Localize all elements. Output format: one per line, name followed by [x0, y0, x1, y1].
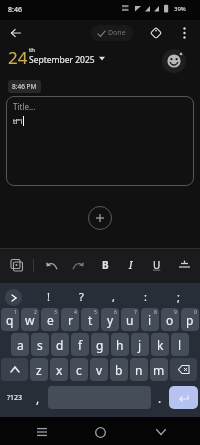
button[interactable]: ,	[106, 285, 120, 307]
staticText: l	[178, 337, 182, 353]
staticText: 5	[94, 309, 97, 316]
button[interactable]: f	[71, 333, 89, 356]
button[interactable]: U	[148, 253, 166, 277]
staticText: b	[115, 362, 123, 378]
button[interactable]: Done	[91, 25, 133, 41]
staticText: s	[37, 337, 43, 353]
button[interactable]: e	[41, 308, 59, 331]
button[interactable]	[68, 255, 88, 275]
button[interactable]: z	[30, 358, 48, 381]
button[interactable]	[1, 358, 28, 381]
staticText: I	[129, 258, 133, 272]
button[interactable]	[174, 23, 194, 43]
staticText: !	[47, 289, 50, 304]
staticText: Title...	[13, 101, 36, 112]
button[interactable]: 8:46 PM	[12, 82, 37, 91]
staticText: x	[56, 362, 63, 378]
button[interactable]	[6, 23, 26, 43]
staticText: Done	[108, 28, 126, 38]
button[interactable]: h	[111, 333, 129, 356]
button[interactable]: ?	[74, 285, 88, 307]
button[interactable]: v	[90, 358, 108, 381]
staticText: 24	[8, 46, 28, 69]
button[interactable]: i	[141, 308, 159, 331]
staticText: September 2025	[29, 54, 95, 66]
staticText: 8	[154, 309, 157, 316]
button[interactable]: a	[11, 333, 29, 356]
button[interactable]: p	[181, 308, 199, 331]
button[interactable]	[88, 206, 112, 230]
staticText: ,	[36, 390, 40, 406]
button[interactable]: s	[31, 333, 49, 356]
staticText: tf"l	[13, 117, 23, 126]
staticText: h	[116, 337, 124, 353]
staticText: c	[76, 362, 82, 378]
button[interactable]: .	[153, 386, 167, 409]
staticText: 9	[174, 309, 177, 316]
button[interactable]: c	[70, 358, 88, 381]
button[interactable]: 24	[8, 46, 105, 69]
button[interactable]: !	[41, 285, 55, 307]
button[interactable]	[42, 255, 62, 275]
staticText: 3	[54, 309, 57, 316]
button[interactable]: d	[51, 333, 69, 356]
button[interactable]: y	[101, 308, 119, 331]
staticText: m	[153, 362, 165, 378]
button[interactable]: ?123	[1, 386, 28, 409]
staticText: j	[138, 337, 142, 353]
staticText: 1	[14, 309, 17, 316]
button[interactable]: B	[96, 253, 114, 277]
staticText: 0	[194, 309, 197, 316]
button[interactable]	[169, 386, 198, 409]
staticText: z	[36, 362, 42, 378]
button[interactable]: b	[110, 358, 128, 381]
button[interactable]	[162, 49, 186, 73]
staticText: d	[56, 337, 64, 353]
staticText: 7	[134, 309, 137, 316]
button[interactable]: ;	[171, 285, 185, 307]
button[interactable]	[146, 23, 166, 43]
staticText: w	[25, 312, 35, 328]
button[interactable]: k	[151, 333, 169, 356]
button[interactable]: w	[21, 308, 39, 331]
button[interactable]: l	[171, 333, 189, 356]
button[interactable]	[170, 358, 197, 381]
button[interactable]: Title...	[6, 96, 194, 186]
staticText: k	[157, 337, 164, 353]
button[interactable]	[174, 255, 194, 275]
staticText: U	[153, 258, 161, 272]
button[interactable]: g	[91, 333, 109, 356]
button[interactable]: x	[50, 358, 68, 381]
staticText: o	[166, 312, 174, 328]
button[interactable]: n	[130, 358, 148, 381]
staticText: 8:46	[8, 5, 22, 15]
staticText: ?123	[7, 393, 23, 403]
staticText: 8:46 PM	[12, 82, 37, 91]
button[interactable]: ,	[30, 386, 46, 409]
button[interactable]	[32, 422, 52, 442]
staticText: ;	[177, 289, 180, 304]
staticText: v	[96, 362, 103, 378]
staticText: 39%	[174, 5, 186, 13]
button[interactable]: j	[131, 333, 149, 356]
staticText: r	[68, 312, 73, 328]
staticText: 4	[74, 309, 77, 316]
staticText: p	[186, 312, 194, 328]
staticText: n	[135, 362, 143, 378]
button[interactable]	[90, 422, 110, 442]
staticText: th	[29, 46, 35, 54]
button[interactable]	[151, 422, 171, 442]
button[interactable]: :	[138, 285, 152, 307]
button[interactable]	[5, 289, 22, 306]
button[interactable]: I	[122, 253, 140, 277]
staticText: g	[96, 337, 104, 353]
staticText: :	[144, 289, 147, 304]
button[interactable]: o	[161, 308, 179, 331]
button[interactable]: u	[121, 308, 139, 331]
button[interactable]: r	[61, 308, 79, 331]
button[interactable]: t	[81, 308, 99, 331]
button[interactable]: m	[150, 358, 168, 381]
button[interactable]	[6, 255, 26, 275]
button[interactable]: q	[1, 308, 19, 331]
